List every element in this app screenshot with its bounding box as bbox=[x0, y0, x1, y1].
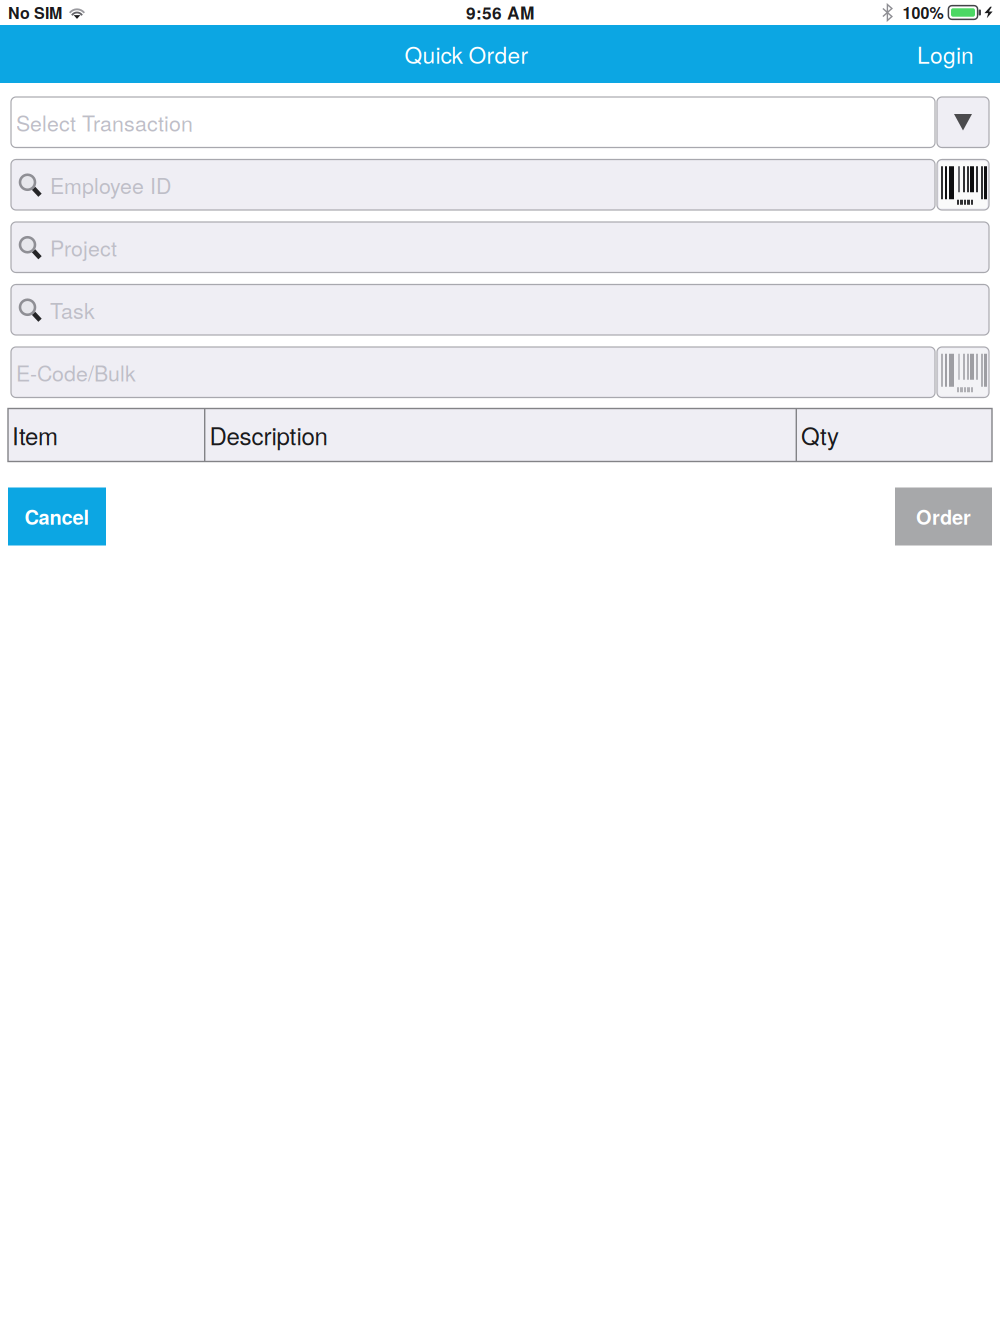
button[interactable]: Cancel bbox=[8, 487, 106, 545]
staticText: Select Transaction bbox=[16, 107, 193, 137]
button[interactable]: Scan code barcode bbox=[937, 347, 989, 397]
staticText: Qty bbox=[801, 418, 839, 452]
button[interactable]: Select transaction bbox=[937, 97, 989, 147]
staticText: Task bbox=[50, 294, 95, 325]
button[interactable]: Login bbox=[904, 21, 987, 87]
staticText: Employee ID bbox=[50, 169, 171, 200]
staticText: 100% bbox=[902, 1, 943, 24]
staticText: Item bbox=[12, 418, 58, 452]
staticText: E-Code/Bulk bbox=[16, 357, 136, 387]
staticText: Cancel bbox=[24, 502, 89, 531]
button[interactable]: Order bbox=[895, 487, 992, 545]
staticText: Project bbox=[50, 232, 117, 262]
staticText: 9:56 AM bbox=[466, 0, 534, 25]
staticText: No SIM bbox=[8, 1, 62, 24]
staticText: Quick Order bbox=[404, 38, 528, 70]
staticText: Login bbox=[917, 38, 974, 70]
staticText: Order bbox=[916, 502, 971, 531]
button[interactable]: Scan employee barcode bbox=[937, 159, 989, 210]
staticText: Description bbox=[209, 418, 327, 452]
